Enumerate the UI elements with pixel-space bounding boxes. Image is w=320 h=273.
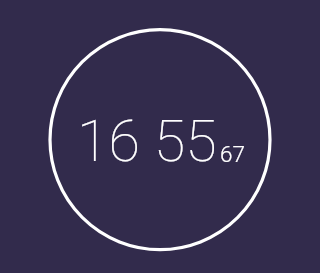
staticText: 67 xyxy=(220,141,245,167)
staticText: 16 55 xyxy=(77,108,217,175)
button[interactable]: Stopwatch, 16 minutes 55.67 seconds elap… xyxy=(0,0,320,273)
